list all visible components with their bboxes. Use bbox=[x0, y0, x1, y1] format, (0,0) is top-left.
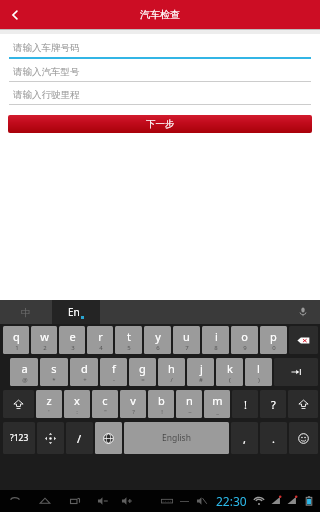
button[interactable]: Change language bbox=[95, 422, 122, 454]
button[interactable]: u bbox=[173, 326, 200, 354]
staticText: : bbox=[76, 408, 78, 416]
button[interactable]: Voice input bbox=[286, 300, 320, 324]
button[interactable]: m bbox=[204, 390, 230, 418]
button[interactable]: . bbox=[260, 422, 287, 454]
staticText: x bbox=[74, 393, 80, 408]
button[interactable]: ? bbox=[260, 390, 286, 418]
button[interactable]: Recent apps bbox=[68, 494, 82, 508]
staticText: 中 bbox=[21, 306, 31, 319]
staticText: ' bbox=[48, 408, 50, 416]
button[interactable]: 下一步 bbox=[8, 115, 312, 133]
button[interactable]: Back bbox=[8, 494, 22, 508]
staticText: a bbox=[21, 361, 28, 376]
staticText: p bbox=[270, 329, 277, 344]
button[interactable]: Enter bbox=[274, 358, 318, 386]
button[interactable]: c bbox=[92, 390, 118, 418]
button[interactable]: 请输入行驶里程 bbox=[9, 85, 311, 108]
staticText: y bbox=[155, 329, 161, 344]
staticText: ? bbox=[271, 397, 276, 412]
staticText: u bbox=[183, 329, 190, 344]
staticText: r bbox=[98, 329, 103, 344]
button[interactable]: s bbox=[40, 358, 68, 386]
button[interactable]: p bbox=[260, 326, 287, 354]
staticText: En bbox=[68, 305, 80, 319]
staticText: 5 bbox=[127, 344, 131, 352]
staticText: 3 bbox=[71, 344, 75, 352]
button[interactable]: En bbox=[52, 300, 100, 324]
staticText: 请输入车牌号码 bbox=[13, 42, 80, 54]
staticText: # bbox=[199, 376, 203, 384]
staticText: t bbox=[127, 329, 131, 344]
button[interactable]: o bbox=[231, 326, 258, 354]
button[interactable]: a bbox=[10, 358, 38, 386]
button[interactable]: 请输入车牌号码 bbox=[9, 38, 311, 62]
button[interactable]: Backspace bbox=[289, 326, 318, 354]
staticText: 8 bbox=[214, 344, 218, 352]
button[interactable]: y bbox=[144, 326, 171, 354]
button[interactable]: ?123 bbox=[3, 422, 35, 454]
button[interactable]: Home bbox=[38, 494, 52, 508]
button[interactable]: w bbox=[31, 326, 57, 354]
button[interactable]: 中 bbox=[0, 300, 52, 324]
button[interactable]: q bbox=[3, 326, 29, 354]
staticText: z bbox=[46, 393, 52, 408]
button[interactable]: z bbox=[36, 390, 62, 418]
button[interactable]: r bbox=[87, 326, 113, 354]
staticText: 请输入行驶里程 bbox=[13, 89, 80, 101]
button[interactable]: / bbox=[66, 422, 93, 454]
staticText: / bbox=[77, 431, 82, 446]
staticText: c bbox=[102, 393, 108, 408]
button[interactable]: , bbox=[231, 422, 258, 454]
button[interactable]: Arrow keys bbox=[37, 422, 64, 454]
staticText: ? bbox=[132, 408, 135, 416]
button[interactable]: Emoji bbox=[289, 422, 318, 454]
staticText: d bbox=[81, 361, 88, 376]
button[interactable]: Shift bbox=[288, 390, 318, 418]
staticText: = bbox=[141, 376, 145, 384]
staticText: 4 bbox=[99, 344, 103, 352]
button[interactable]: English bbox=[124, 422, 229, 454]
button[interactable]: t bbox=[115, 326, 142, 354]
staticText: l bbox=[257, 361, 260, 376]
button[interactable]: h bbox=[158, 358, 185, 386]
button[interactable]: Shift bbox=[3, 390, 34, 418]
button[interactable]: d bbox=[70, 358, 98, 386]
button[interactable]: b bbox=[148, 390, 174, 418]
staticText: - bbox=[113, 376, 115, 384]
staticText: 2 bbox=[43, 344, 47, 352]
button[interactable]: k bbox=[216, 358, 243, 386]
staticText: b bbox=[158, 393, 165, 408]
staticText: ) bbox=[258, 376, 260, 384]
staticText: , bbox=[243, 431, 246, 446]
staticText: e bbox=[69, 329, 76, 344]
staticText: w bbox=[40, 329, 49, 344]
staticText: 22:30 bbox=[216, 493, 247, 509]
staticText: 1 bbox=[15, 344, 19, 352]
staticText: m bbox=[212, 393, 223, 408]
button[interactable]: Back bbox=[0, 0, 30, 29]
button[interactable]: x bbox=[64, 390, 90, 418]
staticText: k bbox=[227, 361, 233, 376]
button[interactable]: Volume up bbox=[120, 494, 134, 508]
button[interactable]: i bbox=[202, 326, 229, 354]
button[interactable]: e bbox=[59, 326, 85, 354]
staticText: 汽车检查 bbox=[140, 8, 180, 21]
button[interactable]: g bbox=[129, 358, 156, 386]
staticText: v bbox=[130, 393, 136, 408]
staticText: i bbox=[215, 329, 218, 344]
button[interactable]: Volume down bbox=[96, 494, 110, 508]
staticText: 请输入汽车型号 bbox=[13, 66, 80, 78]
button[interactable]: v bbox=[120, 390, 146, 418]
button[interactable]: l bbox=[245, 358, 272, 386]
button[interactable]: ! bbox=[232, 390, 258, 418]
button[interactable]: f bbox=[100, 358, 127, 386]
staticText: s bbox=[51, 361, 57, 376]
staticText: g bbox=[139, 361, 146, 376]
button[interactable]: 请输入汽车型号 bbox=[9, 62, 311, 85]
staticText: 0 bbox=[272, 344, 276, 352]
staticText: _ bbox=[216, 408, 219, 416]
staticText: ( bbox=[229, 376, 231, 384]
button[interactable]: n bbox=[176, 390, 202, 418]
button[interactable]: j bbox=[187, 358, 214, 386]
staticText: ~ bbox=[188, 408, 192, 416]
